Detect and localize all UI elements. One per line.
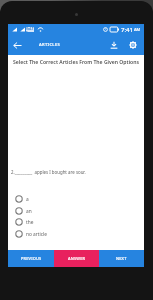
button[interactable]: no article — [15, 228, 48, 240]
button[interactable]: Back — [8, 36, 27, 55]
staticText: ARTICLES — [39, 42, 61, 48]
staticText: ANSWER — [68, 256, 86, 261]
staticText: NEXT — [116, 256, 127, 261]
button[interactable]: ANSWER — [54, 250, 99, 267]
staticText: AM — [134, 27, 141, 32]
button[interactable]: the — [15, 216, 34, 228]
button[interactable]: Settings — [124, 36, 142, 54]
button[interactable]: a — [15, 193, 29, 205]
staticText: PREVIOUS — [21, 256, 42, 261]
staticText: VoLTE — [26, 27, 34, 32]
staticText: 7:41 — [121, 26, 133, 34]
staticText: a — [26, 196, 29, 203]
staticText: no article — [26, 231, 48, 238]
button[interactable]: an — [15, 205, 32, 217]
staticText: Select The Correct Articles From The Giv… — [12, 59, 140, 66]
staticText: 2._________ apples I bought are sour. — [11, 169, 86, 175]
button[interactable]: PREVIOUS — [8, 250, 54, 267]
button[interactable]: NEXT — [99, 250, 144, 267]
button[interactable]: Download — [105, 36, 123, 54]
staticText: the — [26, 219, 34, 226]
staticText: an — [26, 208, 32, 215]
